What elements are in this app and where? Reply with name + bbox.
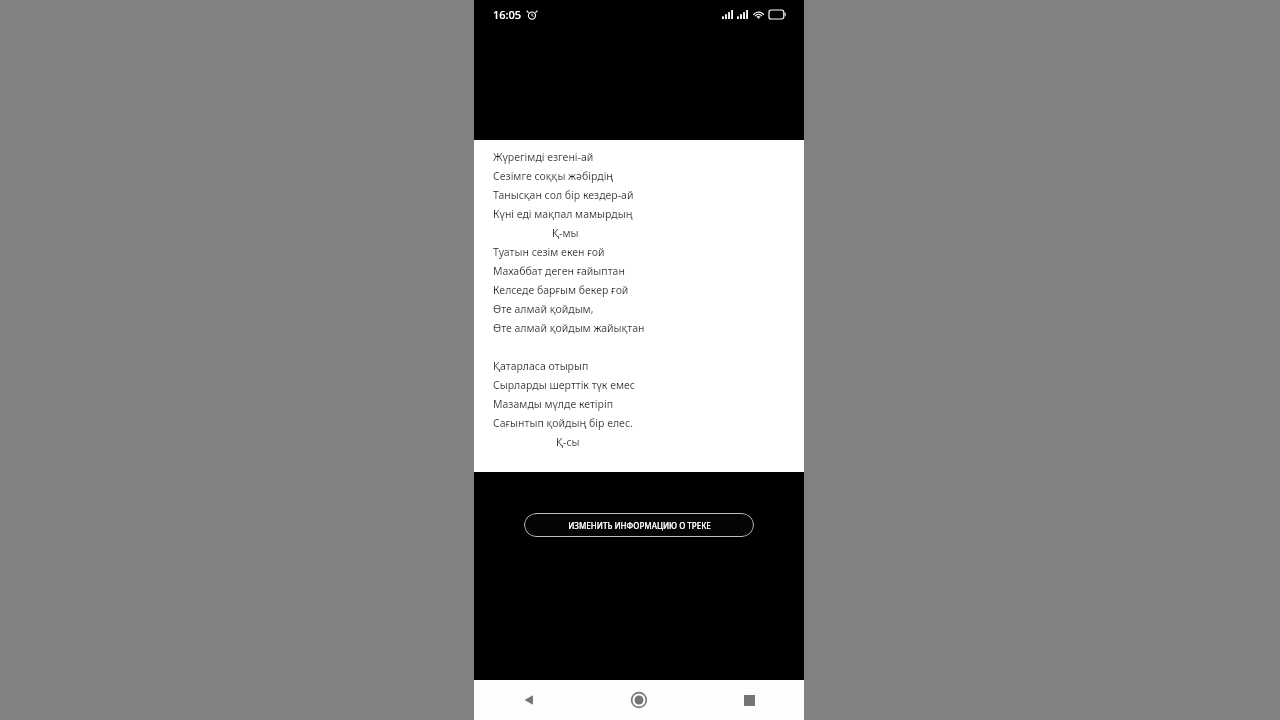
staticText: Қ-мы bbox=[552, 226, 579, 240]
staticText: Өте алмай қойдым, bbox=[493, 302, 594, 316]
button[interactable]: Recent apps bbox=[694, 680, 804, 720]
staticText: Өте алмай қойдым жайықтан bbox=[493, 321, 645, 335]
staticText: ИЗМЕНИТЬ ИНФОРМАЦИЮ О ТРЕКЕ bbox=[568, 520, 711, 531]
staticText: Сырларды шерттік түк емес bbox=[493, 378, 635, 392]
staticText: Күні еді мақпал мамырдың bbox=[493, 207, 633, 221]
staticText: Сағынтып қойдың бір елес. bbox=[493, 416, 633, 430]
button[interactable]: Back bbox=[474, 680, 584, 720]
staticText: Туатын сезім екен ғой bbox=[493, 245, 605, 259]
button[interactable]: ИЗМЕНИТЬ ИНФОРМАЦИЮ О ТРЕКЕ bbox=[524, 513, 754, 537]
staticText: 16:05 bbox=[493, 7, 522, 22]
staticText: Жүрегімді езгені-ай bbox=[493, 150, 594, 164]
staticText: Танысқан сол бір кездер-ай bbox=[493, 188, 634, 202]
staticText: Келседе барғым бекер ғой bbox=[493, 283, 629, 297]
staticText: Қ-сы bbox=[556, 435, 580, 449]
staticText: Қатарласа отырып bbox=[493, 359, 589, 373]
button[interactable]: Home bbox=[584, 680, 694, 720]
staticText: Сезімге соққы жәбірдің bbox=[493, 169, 614, 183]
staticText: Махаббат деген ғайыптан bbox=[493, 264, 625, 278]
staticText: Мазамды мүлде кетіріп bbox=[493, 397, 614, 411]
